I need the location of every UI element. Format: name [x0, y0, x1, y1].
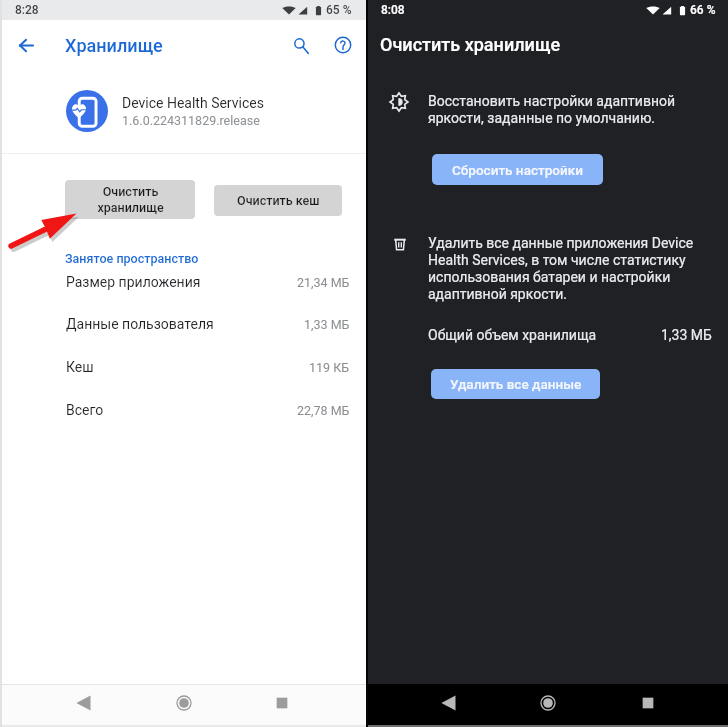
staticText: 8:28: [15, 3, 39, 17]
button[interactable]: Сбросить настройки: [432, 154, 603, 185]
staticText: Удалить все данные: [450, 376, 582, 392]
staticText: Данные пользователя: [66, 316, 214, 332]
staticText: 119 КБ: [309, 360, 350, 375]
staticText: 1.6.0.224311829.release: [122, 113, 260, 128]
staticText: Хранилище: [65, 35, 163, 56]
button[interactable]: Home: [531, 686, 565, 720]
staticText: Занятое пространство: [65, 251, 199, 266]
button[interactable]: Кеш: [0, 353, 366, 381]
staticText: Всего: [66, 402, 104, 418]
staticText: 22,78 МБ: [297, 403, 350, 418]
button[interactable]: Очистить хранилище: [65, 180, 195, 219]
button[interactable]: Search: [286, 31, 314, 59]
staticText: Очистить кеш: [237, 193, 320, 208]
staticText: 1,33 МБ: [304, 317, 350, 332]
staticText: Очистить хранилище: [380, 34, 561, 55]
staticText: Очистить хранилище: [97, 184, 164, 215]
button[interactable]: Home: [167, 686, 201, 720]
staticText: Сбросить настройки: [452, 162, 583, 178]
staticText: Восстановить настройки адаптивной яркост…: [428, 93, 676, 127]
staticText: 66 %: [690, 3, 716, 17]
button[interactable]: Recents: [265, 686, 299, 720]
staticText: Удалить все данные приложения Device Hea…: [428, 235, 694, 303]
button[interactable]: Back: [65, 686, 99, 720]
button[interactable]: Help: [329, 31, 357, 59]
staticText: Общий объем хранилища: [428, 327, 597, 343]
button[interactable]: Данные пользователя: [0, 310, 366, 338]
button[interactable]: Recents: [631, 686, 665, 720]
button[interactable]: Back: [430, 686, 464, 720]
button[interactable]: Удалить все данные: [431, 369, 600, 399]
staticText: Кеш: [66, 359, 94, 375]
button[interactable]: Размер приложения: [0, 268, 366, 296]
staticText: Device Health Services: [122, 95, 264, 111]
staticText: 1,33 МБ: [661, 327, 712, 343]
button[interactable]: Back: [13, 32, 40, 59]
button[interactable]: Очистить кеш: [214, 185, 342, 216]
staticText: 21,34 МБ: [297, 275, 350, 290]
staticText: Размер приложения: [66, 274, 201, 290]
staticText: 65 %: [326, 3, 352, 17]
staticText: 8:08: [381, 3, 405, 17]
button[interactable]: Всего: [0, 396, 366, 424]
